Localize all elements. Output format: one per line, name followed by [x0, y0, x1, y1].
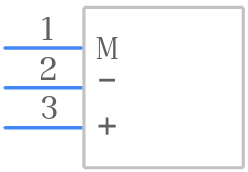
button[interactable]: Three pin component symbol [0, 0, 248, 172]
